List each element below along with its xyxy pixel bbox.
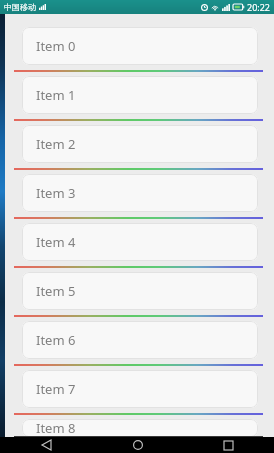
staticText: 中国移动 xyxy=(4,2,36,12)
button[interactable]: Item 5 xyxy=(22,272,258,310)
button[interactable]: Item 4 xyxy=(22,223,258,261)
button[interactable]: Item 6 xyxy=(22,321,258,359)
staticText: Item 1 xyxy=(36,86,76,104)
button[interactable]: Item 2 xyxy=(22,125,258,163)
staticText: 20:22 xyxy=(247,1,271,13)
staticText: Item 8 xyxy=(36,419,76,437)
button[interactable]: Back xyxy=(0,437,92,453)
staticText: Item 4 xyxy=(36,233,76,251)
button[interactable]: Item 3 xyxy=(22,174,258,212)
staticText: Item 2 xyxy=(36,135,76,153)
staticText: Item 5 xyxy=(36,282,76,300)
button[interactable]: Item 8 xyxy=(22,419,258,437)
button[interactable]: Item 7 xyxy=(22,370,258,408)
staticText: Item 7 xyxy=(36,380,76,398)
staticText: Item 3 xyxy=(36,184,76,202)
staticText: Item 6 xyxy=(36,331,76,349)
button[interactable]: Item 1 xyxy=(22,76,258,114)
button[interactable]: Item 0 xyxy=(22,27,258,65)
staticText: Item 0 xyxy=(36,37,76,55)
button[interactable]: Home xyxy=(92,437,183,453)
button[interactable]: Recent apps xyxy=(183,437,274,453)
